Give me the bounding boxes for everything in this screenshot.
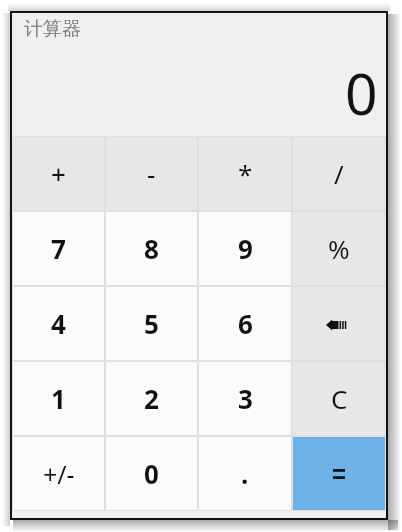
button[interactable]: 9 bbox=[199, 212, 291, 285]
staticText: 计算器 bbox=[24, 17, 81, 41]
staticText: 9 bbox=[238, 231, 253, 266]
button[interactable] bbox=[293, 437, 385, 510]
button[interactable]: 2 bbox=[106, 362, 197, 435]
button[interactable]: 3 bbox=[199, 362, 291, 435]
button[interactable]: % bbox=[293, 212, 385, 285]
button[interactable]: 0 bbox=[106, 437, 197, 510]
staticText: . bbox=[241, 456, 249, 491]
staticText: 7 bbox=[51, 231, 66, 266]
button[interactable] bbox=[293, 287, 385, 360]
staticText: 5 bbox=[144, 306, 159, 341]
button[interactable]: 6 bbox=[199, 287, 291, 360]
staticText: % bbox=[328, 231, 350, 266]
button[interactable]: 1 bbox=[13, 362, 104, 435]
button[interactable]: C bbox=[293, 362, 385, 435]
button[interactable]: - bbox=[106, 137, 197, 210]
button[interactable]: * bbox=[199, 137, 291, 210]
staticText: 0 bbox=[345, 54, 378, 132]
button[interactable]: 7 bbox=[13, 212, 104, 285]
staticText: / bbox=[334, 156, 344, 191]
staticText: +/- bbox=[43, 457, 75, 491]
button[interactable]: 4 bbox=[13, 287, 104, 360]
staticText: - bbox=[147, 156, 156, 191]
staticText: + bbox=[51, 156, 66, 191]
button[interactable]: . bbox=[199, 437, 291, 510]
staticText: 6 bbox=[238, 306, 253, 341]
staticText: * bbox=[238, 156, 253, 191]
button[interactable]: / bbox=[293, 137, 385, 210]
button[interactable]: +/- bbox=[13, 437, 104, 510]
button[interactable]: 8 bbox=[106, 212, 197, 285]
button[interactable]: + bbox=[13, 137, 104, 210]
staticText: 1 bbox=[51, 381, 66, 416]
staticText: 3 bbox=[238, 381, 253, 416]
staticText: C bbox=[331, 381, 348, 416]
staticText: 2 bbox=[144, 381, 159, 416]
staticText: 4 bbox=[51, 306, 66, 341]
staticText: 0 bbox=[144, 456, 159, 491]
staticText: 8 bbox=[144, 231, 159, 266]
button[interactable]: 5 bbox=[106, 287, 197, 360]
